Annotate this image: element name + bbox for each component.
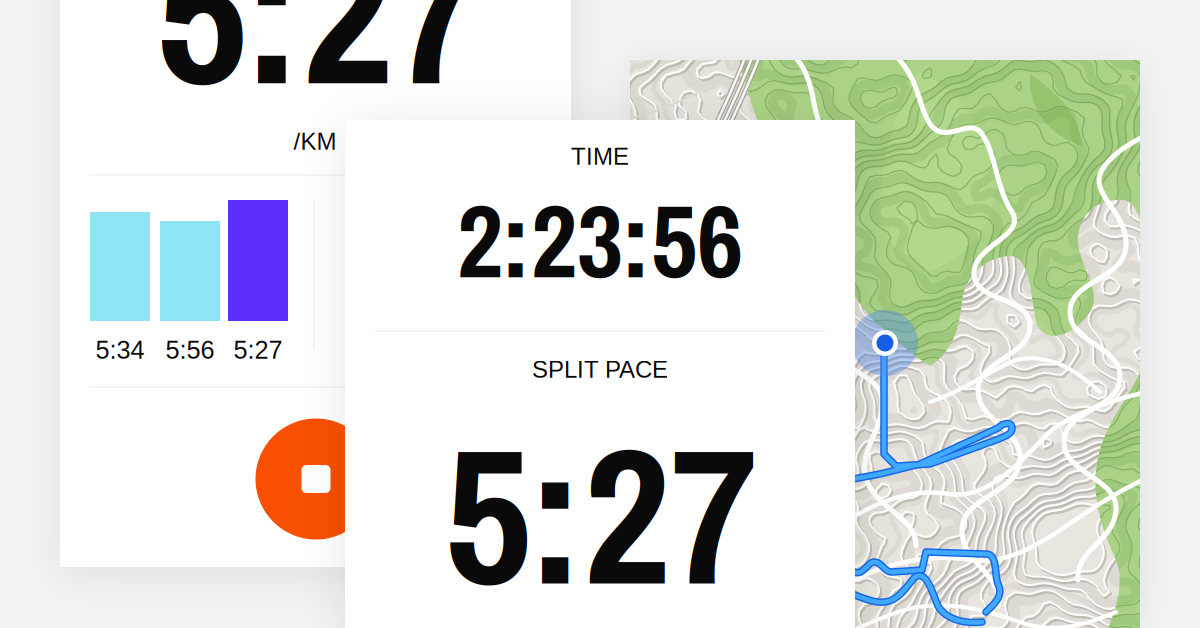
staticText: /KM xyxy=(293,128,336,155)
staticText: SPLIT PACE xyxy=(532,356,668,383)
staticText: TIME xyxy=(571,143,629,170)
staticText: 5:27 xyxy=(444,386,757,628)
staticText: 5:27 xyxy=(156,0,484,146)
staticText: 2:23:56 xyxy=(457,172,743,309)
staticText: 5:56 xyxy=(165,336,214,364)
button[interactable]: Stop workout xyxy=(255,418,376,539)
staticText: 5:34 xyxy=(95,336,144,364)
staticText: 5:27 xyxy=(233,336,282,364)
